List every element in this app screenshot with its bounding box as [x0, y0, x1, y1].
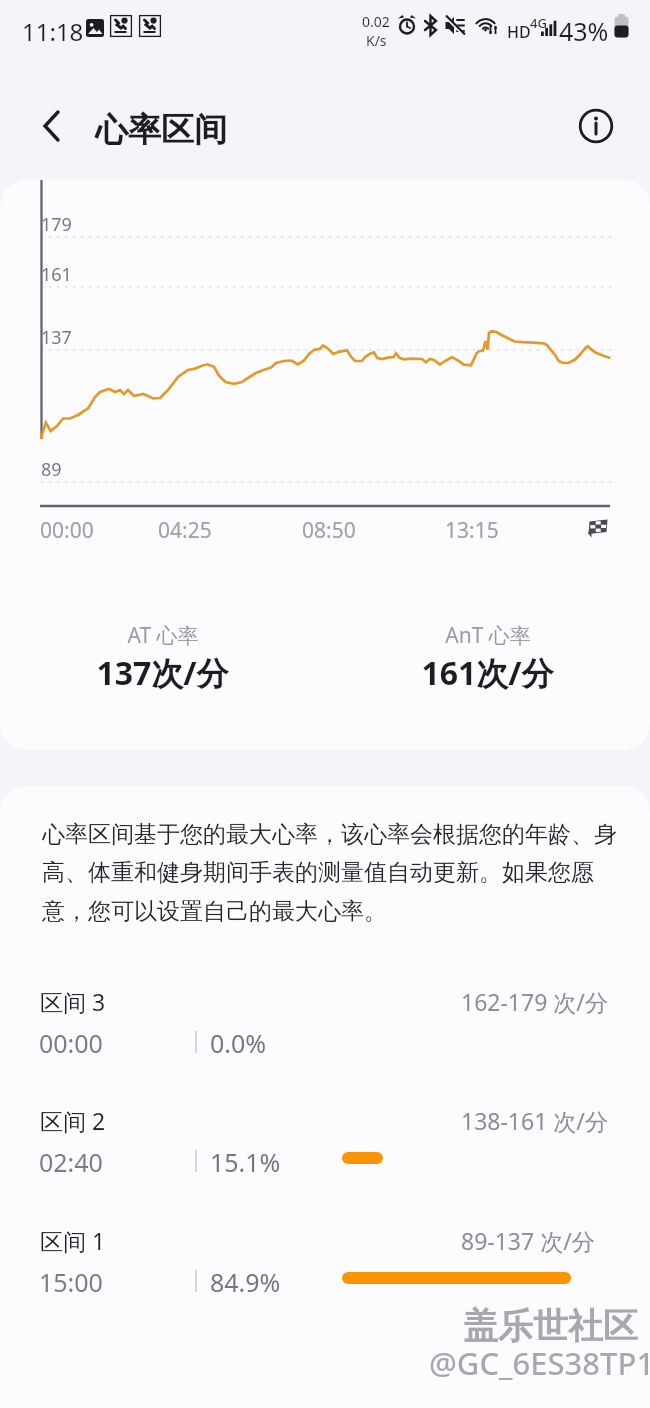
staticText: 08:50	[302, 516, 356, 545]
staticText: 00:00	[40, 516, 94, 545]
staticText: 137	[41, 325, 72, 350]
staticText: 89	[41, 457, 62, 482]
staticText: 0.02	[362, 12, 390, 31]
button[interactable]: Back	[24, 98, 80, 154]
button[interactable]: Information	[568, 98, 624, 154]
staticText: 11:18	[22, 15, 84, 48]
staticText: AnT 心率	[445, 621, 531, 650]
staticText: 161次/分	[421, 651, 554, 695]
staticText: 138-161 次/分	[461, 1105, 608, 1136]
staticText: @GC_6ES38TP1	[429, 1342, 650, 1384]
button[interactable]: 区间 2	[0, 1105, 650, 1195]
button[interactable]: 区间 3	[0, 986, 650, 1076]
staticText: 89-137 次/分	[461, 1225, 595, 1256]
staticText: 43%	[559, 14, 609, 48]
button[interactable]: AT 心率	[0, 621, 325, 695]
staticText: @GC_6ES38TP1	[430, 1343, 650, 1385]
staticText: 4G	[530, 14, 547, 32]
staticText: 179	[41, 212, 72, 237]
staticText: 00:00	[39, 1026, 103, 1060]
staticText: 心率区间	[95, 109, 227, 151]
staticText: 高、体重和健身期间手表的测量值自动更新。如果您愿	[42, 858, 594, 887]
staticText: 区间 2	[40, 1105, 106, 1136]
staticText: 15.1%	[210, 1145, 281, 1179]
button[interactable]: 区间 1	[0, 1225, 650, 1315]
staticText: HD	[507, 21, 531, 43]
staticText: 137次/分	[96, 651, 229, 695]
staticText: 84.9%	[210, 1265, 281, 1299]
button[interactable]: AnT 心率	[325, 621, 650, 695]
staticText: K/s	[366, 31, 387, 50]
staticText: 0.0%	[210, 1026, 267, 1060]
staticText: 区间 3	[40, 986, 106, 1017]
staticText: 意，您可以设置自己的最大心率。	[42, 897, 387, 926]
staticText: AT 心率	[127, 621, 199, 650]
staticText: 盖乐世社区	[463, 1304, 638, 1348]
staticText: 02:40	[39, 1145, 103, 1179]
staticText: 161	[41, 262, 72, 287]
staticText: 心率区间基于您的最大心率，该心率会根据您的年龄、身	[42, 820, 617, 849]
staticText: 区间 1	[40, 1225, 106, 1256]
staticText: 04:25	[158, 516, 212, 545]
staticText: 162-179 次/分	[461, 986, 608, 1017]
staticText: 15:00	[39, 1265, 103, 1299]
staticText: 盖乐世社区	[464, 1305, 639, 1349]
staticText: 13:15	[445, 516, 499, 545]
